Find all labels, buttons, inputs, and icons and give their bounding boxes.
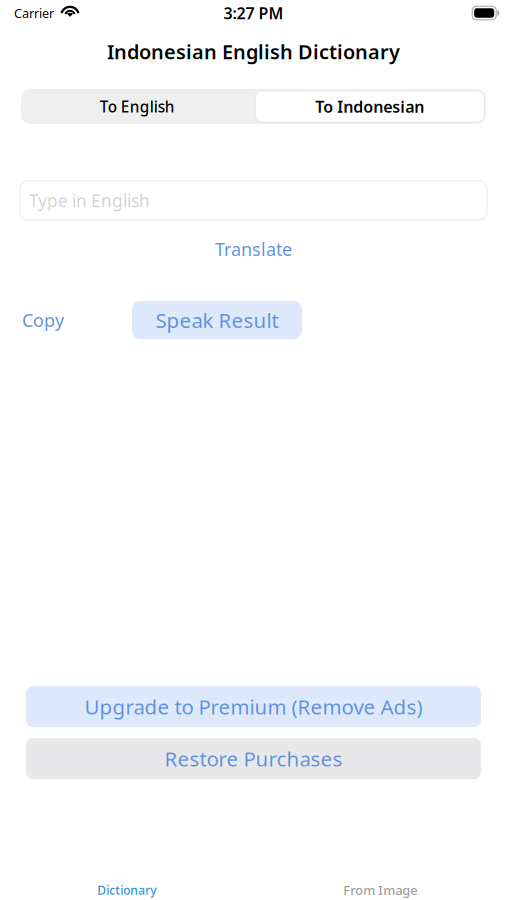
button[interactable]: Copy [22,301,64,339]
staticText: Carrier [14,4,54,22]
button[interactable]: Translate [215,236,292,262]
button[interactable]: From Image [253,880,507,900]
button[interactable]: To English [21,89,253,124]
button[interactable]: Restore Purchases [26,738,481,779]
staticText: To Indonesian [315,96,424,117]
staticText: Copy [22,308,64,332]
staticText: Speak Result [155,306,278,334]
button[interactable]: Upgrade to Premium (Remove Ads) [26,686,481,727]
staticText: To English [100,96,175,117]
staticText: From Image [343,881,417,899]
staticText: Translate [215,237,292,261]
staticText: 3:27 PM [223,2,283,24]
button[interactable]: Dictionary [0,880,253,900]
staticText: Type in English [29,189,150,212]
staticText: Restore Purchases [164,745,342,772]
staticText: Indonesian English Dictionary [107,38,400,65]
button[interactable]: Speak Result [132,301,302,339]
button[interactable]: To Indonesian [253,89,486,124]
staticText: Dictionary [97,882,156,898]
staticText: Upgrade to Premium (Remove Ads) [84,693,422,720]
